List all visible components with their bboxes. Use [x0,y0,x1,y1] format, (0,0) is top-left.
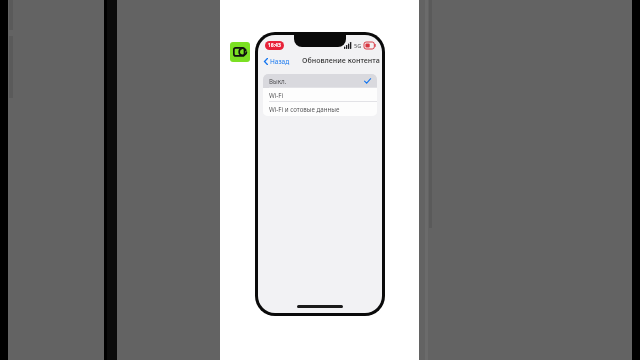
staticText: 16:43 [268,42,281,49]
staticText: Wi-Fi и сотовые данные [269,105,340,113]
staticText: Назад [270,57,290,66]
staticText: Wi-Fi [269,91,284,99]
button[interactable]: Назад [262,56,292,67]
button[interactable]: Wi-Fi и сотовые данные [263,102,377,116]
staticText: 5G [354,42,362,49]
button[interactable]: Background app refresh [230,42,250,62]
button[interactable]: Wi-Fi [263,88,377,102]
staticText: Выкл. [269,77,287,85]
button[interactable]: Выкл. [263,74,377,88]
staticText: Обновление контента [302,56,380,66]
